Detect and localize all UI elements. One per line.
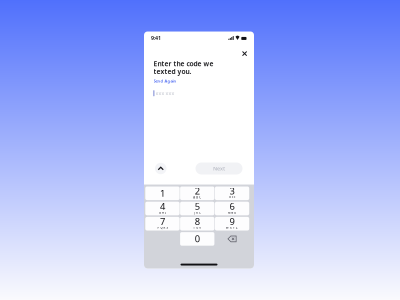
staticText: xxx xxx (155, 90, 174, 97)
staticText: J K L (194, 211, 200, 214)
staticText: 3 (230, 185, 235, 197)
staticText: 4 (160, 200, 165, 212)
staticText: 9:41 (151, 34, 161, 42)
staticText: M N O (228, 211, 236, 214)
staticText: 5 (195, 200, 200, 212)
button[interactable]: 8 (180, 217, 214, 230)
staticText: Next (213, 165, 225, 172)
button[interactable]: Send Again (153, 76, 244, 84)
staticText: 9 (230, 215, 235, 227)
button[interactable]: 3 (215, 186, 249, 200)
button[interactable]: 1 (145, 186, 180, 200)
button[interactable]: 7 (145, 217, 180, 230)
staticText: A B C (193, 196, 201, 199)
button[interactable]: 6 (215, 202, 249, 215)
staticText: 1 (160, 187, 165, 199)
button[interactable]: 0 (180, 232, 214, 246)
button[interactable]: Delete (215, 232, 249, 246)
staticText: texted you. (153, 67, 191, 76)
button[interactable]: 2 (180, 186, 214, 200)
staticText: P Q R S (157, 226, 167, 229)
staticText: Send Again (153, 78, 176, 84)
button[interactable]: 5 (180, 202, 214, 215)
staticText: 6 (230, 200, 235, 212)
staticText: G H I (159, 211, 166, 214)
button[interactable]: Next (195, 162, 242, 174)
button[interactable]: Close (239, 48, 250, 59)
staticText: W X Y Z (226, 226, 238, 229)
button[interactable]: 9 (215, 217, 249, 230)
staticText: 8 (195, 215, 200, 227)
staticText: 2 (195, 185, 200, 197)
staticText: D E F (229, 196, 235, 199)
staticText: T U V (193, 226, 201, 229)
staticText: 7 (160, 215, 165, 227)
staticText: Enter the code we (153, 59, 213, 68)
button[interactable]: Collapse (155, 163, 166, 174)
button[interactable]: 4 (145, 202, 180, 215)
staticText: 0 (195, 232, 200, 245)
